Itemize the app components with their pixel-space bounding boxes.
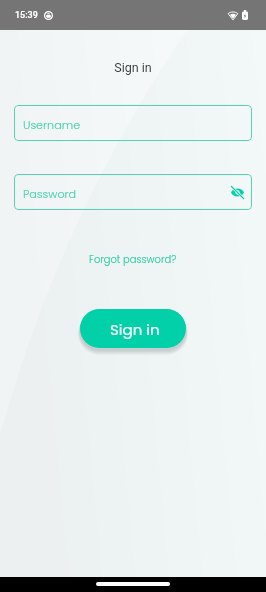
button[interactable]: Password [14, 174, 252, 210]
button[interactable]: Username [14, 105, 252, 141]
staticText: Sign in [0, 60, 266, 75]
button[interactable]: Forgot password? [83, 250, 183, 270]
button[interactable]: Toggle password visibility [225, 180, 249, 204]
button[interactable]: Sign in [80, 309, 186, 348]
staticText: 15:39 [15, 10, 38, 21]
staticText: Username [23, 117, 81, 133]
staticText: Forgot password? [89, 253, 177, 267]
staticText: Sign in [110, 319, 160, 340]
staticText: Password [23, 186, 77, 202]
